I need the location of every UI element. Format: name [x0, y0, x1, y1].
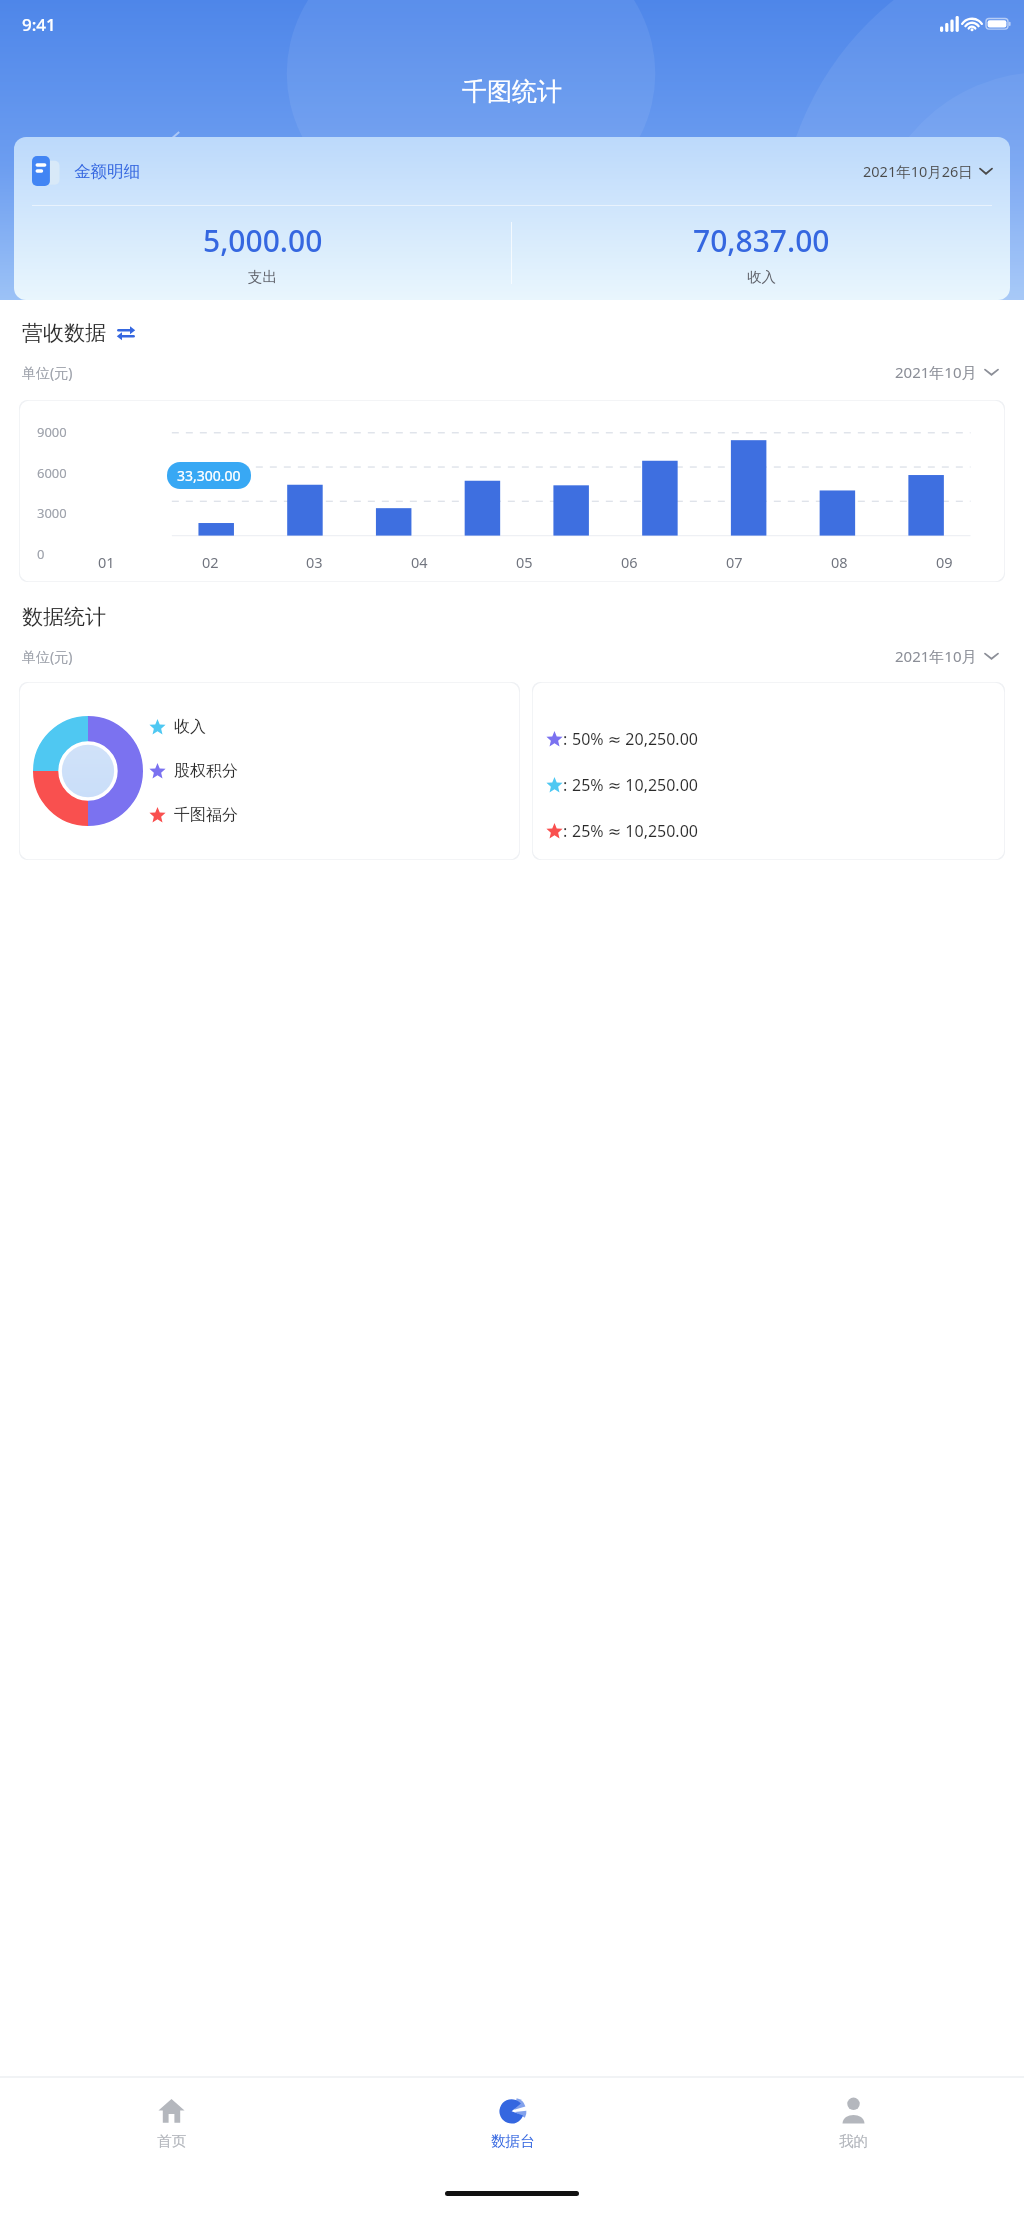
staticText: 数据台	[491, 2132, 535, 2150]
staticText: 2021年10月	[895, 646, 977, 666]
button[interactable]: 9000	[19, 400, 1005, 582]
staticText: 支出	[248, 268, 277, 286]
staticText: :	[563, 728, 572, 750]
staticText: 单位(元)	[22, 363, 73, 382]
staticText: 05	[516, 552, 533, 572]
button[interactable]: 70,837.00	[512, 206, 1010, 300]
other: 切换	[116, 323, 136, 343]
staticText: 千图福分	[174, 805, 238, 825]
staticText: 单位(元)	[22, 647, 73, 666]
staticText: 9000	[37, 423, 67, 441]
staticText: 千图统计	[0, 76, 1024, 107]
staticText: 25% ≈ 10,250.00	[572, 774, 698, 796]
staticText: 2021年10月	[895, 362, 977, 382]
button[interactable]: 首页	[0, 2077, 342, 2169]
staticText: 金额明细	[74, 161, 140, 182]
staticText: 收入	[747, 268, 776, 286]
staticText: 2021年10月26日	[863, 161, 973, 181]
staticText: 股权积分	[174, 761, 238, 781]
button[interactable]: 2021年10月26日	[863, 161, 992, 181]
staticText: 9:41	[22, 13, 56, 36]
staticText: 5,000.00	[203, 220, 323, 261]
staticText: 08	[831, 552, 848, 572]
staticText: :	[563, 820, 572, 842]
staticText: 收入	[174, 717, 206, 737]
button[interactable]: 2021年10月	[891, 358, 1002, 386]
staticText: 06	[621, 552, 638, 572]
staticText: 04	[411, 552, 428, 572]
button[interactable]: 数据台	[342, 2077, 683, 2169]
staticText: 02	[202, 552, 219, 572]
staticText: 07	[726, 552, 743, 572]
button[interactable]: 收入	[19, 682, 520, 860]
staticText: 首页	[157, 2132, 186, 2150]
staticText: 0	[37, 545, 45, 563]
staticText: 70,837.00	[693, 220, 830, 261]
staticText: 数据统计	[22, 604, 106, 630]
button[interactable]: 5,000.00	[14, 206, 511, 300]
button[interactable]: 2021年10月	[891, 642, 1002, 670]
staticText: 25% ≈ 10,250.00	[572, 820, 698, 842]
staticText: 6000	[37, 464, 67, 482]
staticText: 我的	[839, 2132, 868, 2150]
staticText: 3000	[37, 504, 67, 522]
button[interactable]: 营收数据	[22, 320, 136, 346]
staticText: :	[563, 774, 572, 796]
staticText: 33,300.00	[177, 466, 241, 485]
button[interactable]: 我的	[683, 2077, 1024, 2169]
staticText: 01	[98, 552, 115, 572]
staticText: 09	[936, 552, 953, 572]
button[interactable]: 金额明细	[14, 137, 1010, 300]
staticText: 营收数据	[22, 320, 106, 346]
button[interactable]: :	[532, 682, 1005, 860]
staticText: 50% ≈ 20,250.00	[572, 728, 698, 750]
staticText: 03	[306, 552, 323, 572]
